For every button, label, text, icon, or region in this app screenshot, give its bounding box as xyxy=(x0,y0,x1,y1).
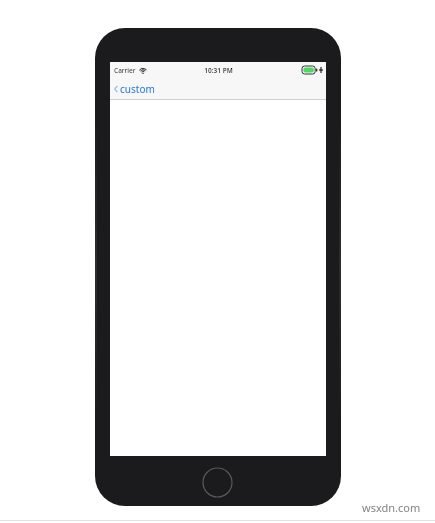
button[interactable]: Home xyxy=(202,467,233,498)
button[interactable]: custom xyxy=(114,82,155,96)
staticText: custom xyxy=(120,82,155,96)
staticText: wsxdn.com xyxy=(362,500,421,515)
staticText: Carrier xyxy=(114,66,136,75)
staticText: 10:31 PM xyxy=(204,66,233,75)
